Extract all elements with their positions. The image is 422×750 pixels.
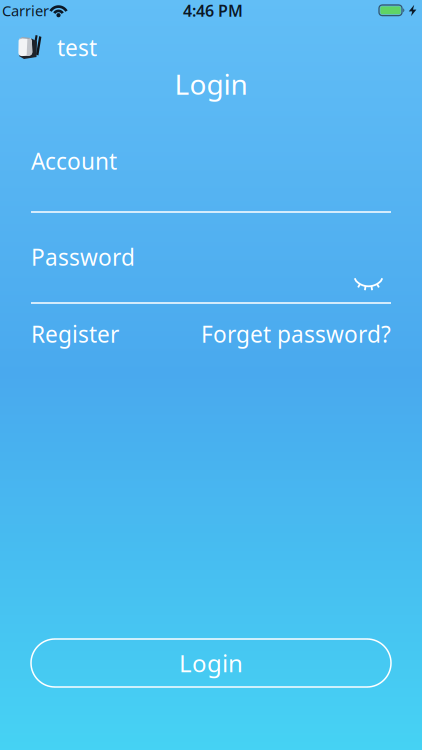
button[interactable]: Register — [31, 319, 119, 349]
staticText: test — [57, 32, 97, 62]
staticText: Register — [31, 319, 119, 349]
button[interactable]: Login — [31, 639, 391, 687]
staticText: Login — [174, 65, 247, 103]
staticText: Login — [179, 647, 243, 679]
staticText: Account — [31, 146, 117, 176]
staticText: 4:46 PM — [183, 0, 243, 21]
button[interactable]: Forget password? — [201, 319, 391, 349]
staticText: Password — [31, 242, 135, 272]
staticText: Carrier — [2, 1, 49, 20]
button[interactable]: Show password — [354, 276, 382, 292]
staticText: Forget password? — [201, 319, 391, 349]
button[interactable]: test — [12, 31, 97, 63]
